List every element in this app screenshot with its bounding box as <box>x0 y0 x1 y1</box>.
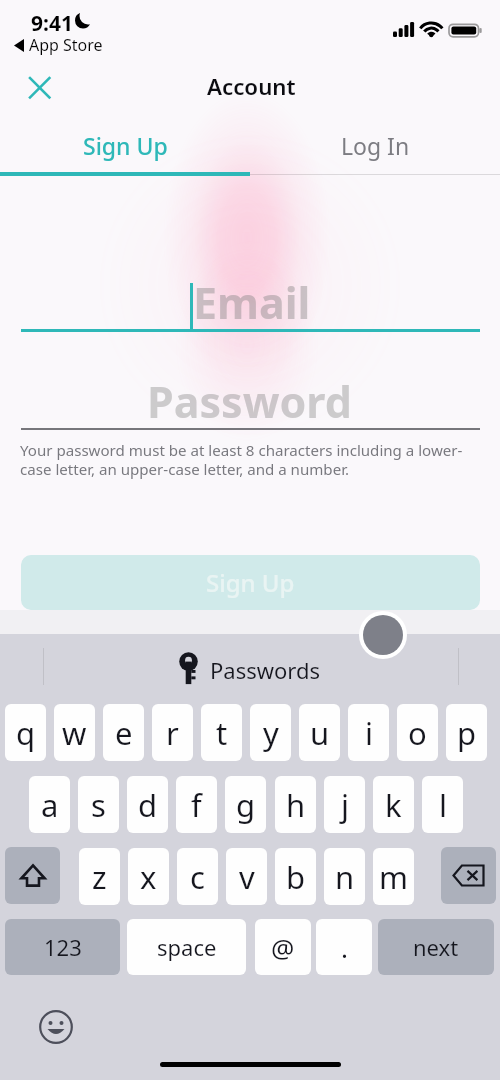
button[interactable]: Shift <box>5 847 60 904</box>
button[interactable]: r <box>152 704 193 761</box>
button[interactable]: . <box>316 919 372 975</box>
button[interactable]: y <box>250 704 291 761</box>
button[interactable]: b <box>275 848 316 905</box>
button[interactable]: k <box>373 776 414 833</box>
button[interactable]: u <box>299 704 340 761</box>
staticText: @ <box>271 930 295 965</box>
staticText: y <box>263 712 279 754</box>
staticText: v <box>239 856 255 898</box>
staticText: space <box>157 932 217 962</box>
staticText: j <box>341 784 349 826</box>
staticText: Account <box>207 71 296 101</box>
staticText: x <box>140 856 157 898</box>
staticText: Sign Up <box>206 566 295 599</box>
button[interactable]: l <box>422 776 463 833</box>
staticText: . <box>341 930 348 965</box>
button[interactable]: 123 <box>5 919 120 975</box>
staticText: o <box>408 712 427 754</box>
button[interactable]: m <box>373 848 414 905</box>
staticText: Passwords <box>210 655 321 685</box>
staticText: Your password must be at least 8 charact… <box>20 440 490 479</box>
button[interactable]: j <box>324 776 365 833</box>
button[interactable]: x <box>128 848 169 905</box>
button[interactable]: d <box>127 776 168 833</box>
staticText: next <box>413 932 459 962</box>
staticText: App Store <box>29 34 103 56</box>
staticText: f <box>191 784 202 826</box>
button[interactable]: Sign Up <box>21 555 480 610</box>
staticText: g <box>236 784 256 826</box>
staticText: e <box>115 712 133 754</box>
staticText: Password <box>147 372 352 431</box>
button[interactable]: w <box>54 704 95 761</box>
button[interactable]: q <box>5 704 46 761</box>
staticText: q <box>16 712 36 754</box>
button[interactable]: v <box>226 848 267 905</box>
staticText: p <box>457 712 477 754</box>
button[interactable]: Emoji keyboard <box>39 1010 73 1044</box>
button[interactable]: o <box>397 704 438 761</box>
button[interactable]: Backspace <box>441 847 496 904</box>
button[interactable]: space <box>127 919 246 975</box>
button[interactable]: s <box>78 776 119 833</box>
staticText: Email <box>193 273 311 332</box>
staticText: b <box>286 856 306 898</box>
button[interactable]: i <box>348 704 389 761</box>
button[interactable]: n <box>324 848 365 905</box>
button[interactable]: Sign Up <box>0 124 250 166</box>
staticText: 9:41 <box>31 9 73 38</box>
button[interactable]: Log In <box>250 124 500 166</box>
button[interactable]: g <box>225 776 266 833</box>
staticText: r <box>166 712 179 754</box>
staticText: c <box>190 856 205 898</box>
staticText: 123 <box>44 932 82 962</box>
button[interactable]: Close <box>18 66 62 110</box>
button[interactable]: @ <box>255 919 311 975</box>
staticText: w <box>62 712 87 754</box>
button[interactable]: e <box>103 704 144 761</box>
staticText: Log In <box>341 130 410 161</box>
staticText: i <box>365 712 373 754</box>
staticText: u <box>310 712 330 754</box>
staticText: Sign Up <box>83 130 168 161</box>
button[interactable]: p <box>446 704 487 761</box>
staticText: s <box>91 784 106 826</box>
button[interactable]: f <box>176 776 217 833</box>
staticText: a <box>41 784 59 826</box>
staticText: l <box>439 784 447 826</box>
staticText: n <box>335 856 355 898</box>
staticText: d <box>138 784 158 826</box>
staticText: m <box>379 856 408 898</box>
button[interactable]: a <box>29 776 70 833</box>
button[interactable]: z <box>79 848 120 905</box>
button[interactable]: t <box>201 704 242 761</box>
staticText: h <box>286 784 306 826</box>
button[interactable]: c <box>177 848 218 905</box>
staticText: k <box>385 784 402 826</box>
staticText: z <box>92 856 107 898</box>
button[interactable]: next <box>378 919 494 975</box>
button[interactable]: h <box>275 776 316 833</box>
staticText: t <box>216 712 228 754</box>
button[interactable]: App Store <box>14 34 103 56</box>
button[interactable]: Passwords <box>0 655 500 688</box>
button[interactable]: Dismiss keyboard <box>359 611 407 659</box>
